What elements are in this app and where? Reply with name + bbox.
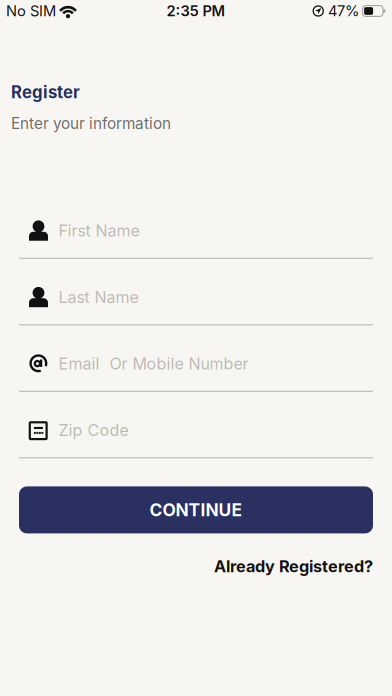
staticText: Already Registered?	[214, 557, 373, 576]
staticText: Enter your information	[11, 114, 171, 133]
staticText: Register	[11, 82, 80, 102]
button[interactable]: CONTINUE	[19, 486, 373, 533]
staticText: 2:35 PM	[166, 2, 225, 20]
staticText: 47%	[328, 2, 359, 20]
button[interactable]: First Name	[19, 213, 373, 259]
staticText: First Name	[58, 221, 139, 240]
staticText: Last Name	[58, 287, 138, 307]
button[interactable]: Last Name	[19, 279, 373, 325]
button[interactable]: Email Or Mobile Number	[19, 346, 373, 392]
button[interactable]: Already Registered?	[19, 553, 373, 579]
staticText: Zip Code	[58, 420, 128, 440]
staticText: No SIM	[6, 2, 56, 20]
staticText: Email Or Mobile Number	[58, 354, 248, 373]
button[interactable]: Zip Code	[19, 412, 373, 458]
staticText: CONTINUE	[149, 499, 242, 520]
